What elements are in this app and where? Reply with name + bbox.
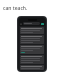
button[interactable]: Action bbox=[41, 23, 44, 25]
button[interactable] bbox=[20, 55, 44, 64]
button[interactable] bbox=[20, 27, 44, 34]
button[interactable] bbox=[23, 22, 40, 25]
button[interactable] bbox=[20, 65, 44, 70]
button[interactable] bbox=[20, 45, 44, 54]
button[interactable]: Menu bbox=[20, 23, 22, 25]
button[interactable] bbox=[20, 35, 44, 44]
staticText: can teach. bbox=[3, 5, 28, 12]
